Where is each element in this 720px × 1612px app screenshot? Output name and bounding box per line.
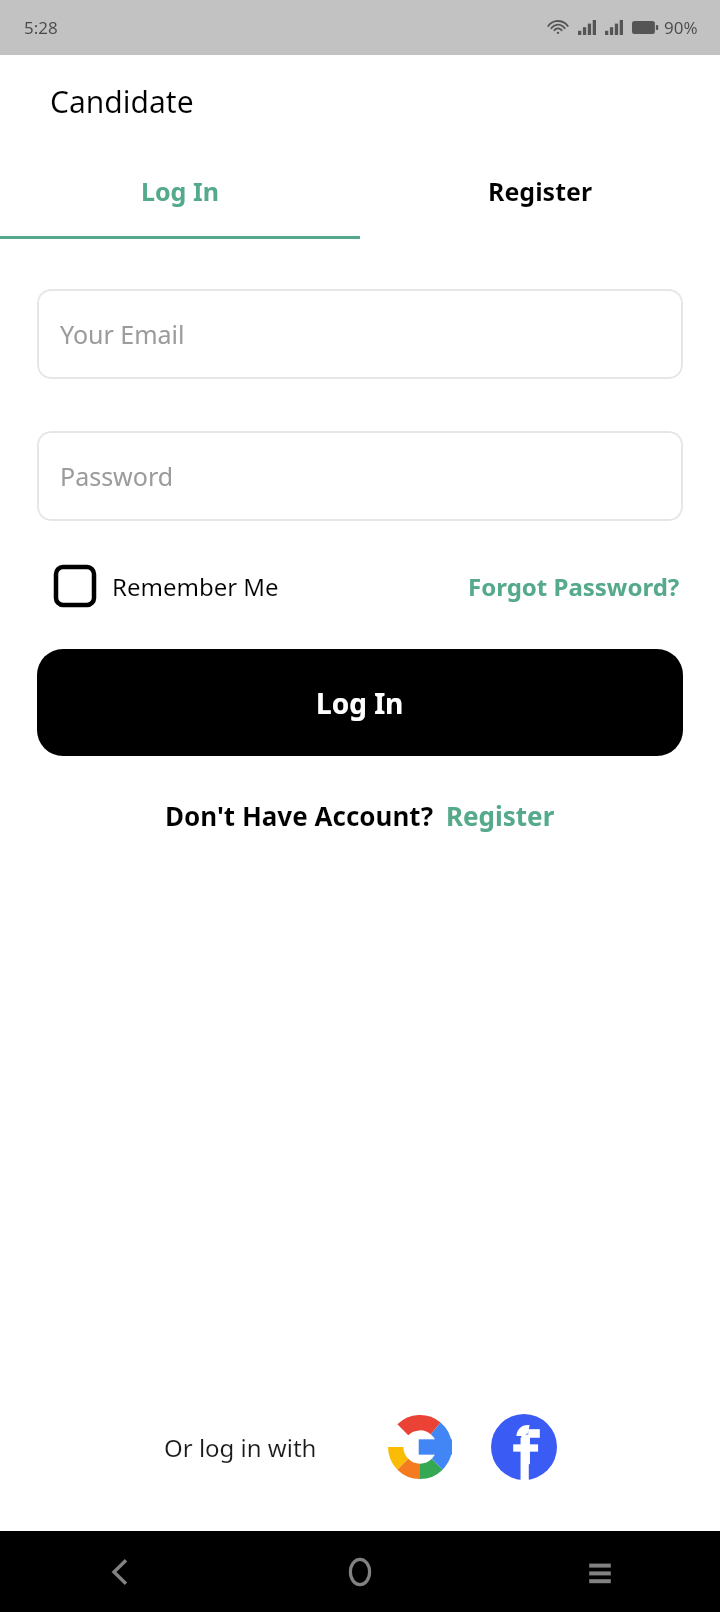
staticText: Forgot Password? <box>468 570 680 603</box>
staticText: Candidate <box>50 81 194 122</box>
button[interactable]: Register <box>360 164 720 218</box>
staticText: 90% <box>664 16 698 39</box>
button[interactable]: Recent apps <box>480 1531 720 1612</box>
staticText: Register <box>488 174 593 208</box>
button[interactable]: Log in with Google <box>387 1414 453 1480</box>
staticText: Your Email <box>60 317 185 351</box>
staticText: Register <box>446 798 555 833</box>
staticText: Or log in with <box>164 1431 317 1464</box>
button[interactable]: Log in with Facebook <box>491 1414 557 1480</box>
staticText: Password <box>60 459 174 493</box>
button[interactable]: Password <box>37 431 683 521</box>
staticText: Remember Me <box>112 570 279 603</box>
button[interactable]: Remember Me <box>56 567 279 605</box>
button[interactable]: Back <box>0 1531 240 1612</box>
button[interactable]: Forgot Password? <box>468 570 680 603</box>
button[interactable]: Register <box>446 798 555 833</box>
staticText: Don't Have Account? <box>165 798 434 833</box>
staticText: 5:28 <box>24 16 58 39</box>
button[interactable]: Home <box>240 1531 480 1612</box>
button[interactable]: Log In <box>0 164 360 218</box>
button[interactable]: Your Email <box>37 289 683 379</box>
button[interactable]: Log In <box>37 649 683 756</box>
staticText: Log In <box>141 174 219 208</box>
staticText: Log In <box>316 684 404 722</box>
